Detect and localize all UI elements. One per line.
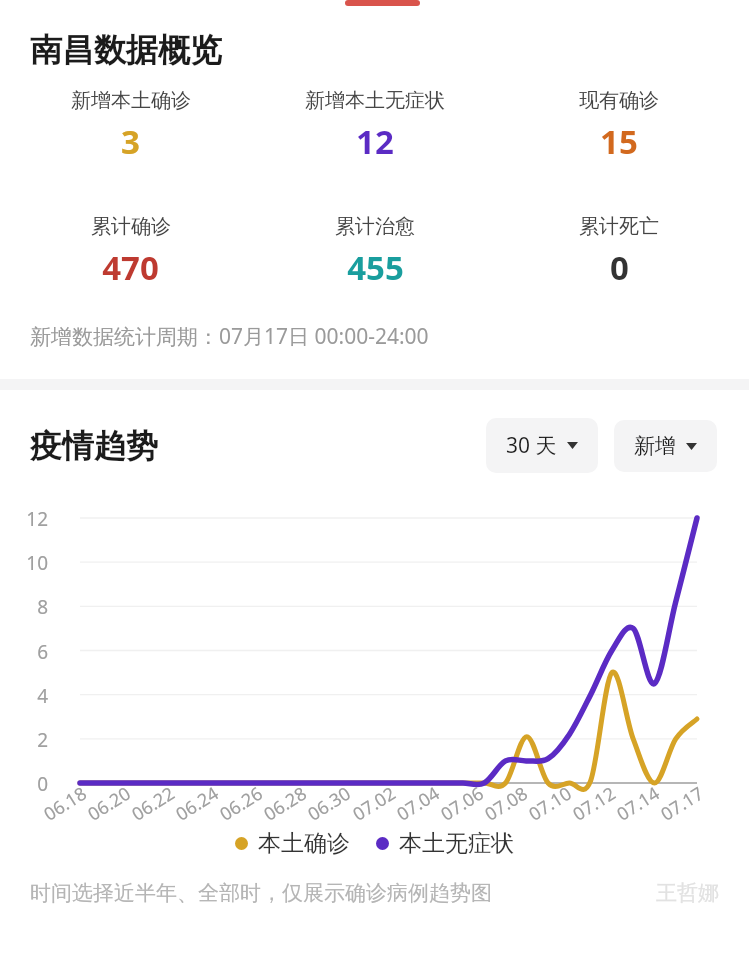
- staticText: 新增: [634, 433, 676, 459]
- staticText: 6: [0, 639, 48, 665]
- staticText: 06.18: [39, 780, 92, 826]
- button[interactable]: 新增本土确诊: [8, 88, 253, 164]
- button[interactable]: 30 天: [486, 418, 598, 473]
- staticText: 0: [0, 771, 48, 797]
- staticText: 07.14: [612, 780, 665, 826]
- button[interactable]: 现有确诊: [497, 88, 741, 164]
- button[interactable]: 新增本土无症状: [253, 88, 497, 164]
- staticText: 新增本土无症状: [305, 88, 445, 113]
- staticText: 07.02: [348, 780, 401, 826]
- staticText: 新增本土确诊: [71, 88, 191, 113]
- staticText: 3: [121, 119, 140, 164]
- staticText: 07.17: [656, 780, 709, 826]
- button[interactable]: 累计确诊: [8, 214, 253, 290]
- staticText: 06.24: [171, 780, 224, 826]
- staticText: 07.04: [392, 780, 445, 826]
- staticText: 06.28: [259, 780, 312, 826]
- staticText: 4: [0, 683, 48, 709]
- staticText: 06.22: [127, 780, 180, 826]
- staticText: 现有确诊: [579, 88, 659, 113]
- button[interactable]: 新增: [614, 420, 717, 472]
- button[interactable]: 累计治愈: [253, 214, 497, 290]
- staticText: 06.26: [215, 780, 268, 826]
- staticText: 累计死亡: [579, 214, 659, 239]
- staticText: 本土确诊: [258, 829, 350, 858]
- staticText: 新增数据统计周期：07月17日 00:00-24:00: [30, 322, 429, 351]
- button[interactable]: 累计死亡: [497, 214, 741, 290]
- staticText: 10: [0, 550, 48, 576]
- staticText: 2: [0, 727, 48, 753]
- staticText: 07.10: [524, 780, 577, 826]
- staticText: 455: [347, 245, 404, 290]
- staticText: 15: [600, 119, 638, 164]
- staticText: 06.20: [83, 780, 136, 826]
- staticText: 疫情趋势: [30, 426, 158, 466]
- staticText: 30 天: [506, 431, 557, 460]
- staticText: 累计确诊: [91, 214, 171, 239]
- staticText: 本土无症状: [399, 829, 514, 858]
- staticText: 8: [0, 594, 48, 620]
- staticText: 0: [610, 245, 629, 290]
- staticText: 470: [102, 245, 159, 290]
- staticText: 12: [356, 119, 394, 164]
- staticText: 王哲娜: [656, 880, 719, 906]
- staticText: 累计治愈: [335, 214, 415, 239]
- staticText: 时间选择近半年、全部时，仅展示确诊病例趋势图: [30, 880, 492, 906]
- staticText: 07.08: [480, 780, 533, 826]
- staticText: 南昌数据概览: [30, 30, 222, 70]
- staticText: 07.12: [568, 780, 621, 826]
- staticText: 06.30: [303, 780, 356, 826]
- staticText: 12: [0, 506, 48, 532]
- staticText: 07.06: [436, 780, 489, 826]
